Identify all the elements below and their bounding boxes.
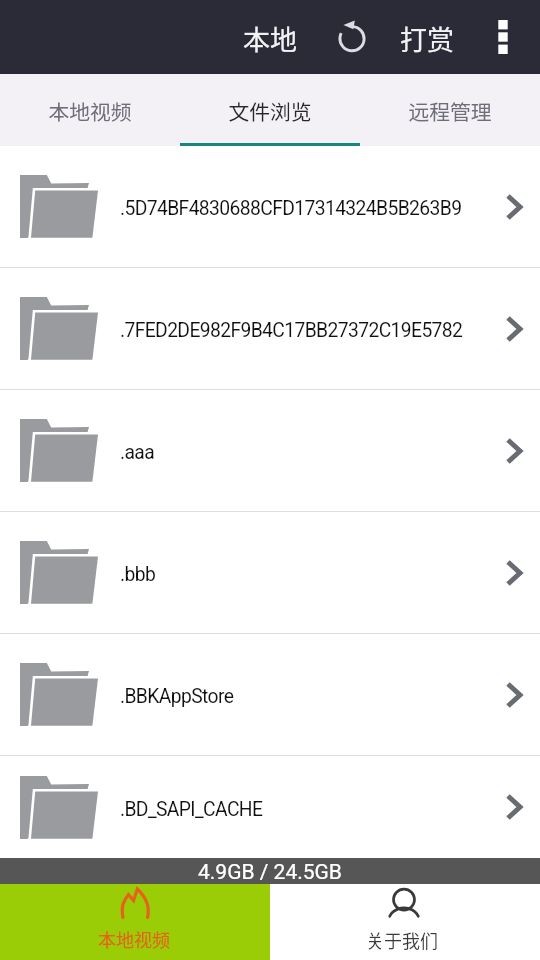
- staticText: 打赏: [400, 19, 454, 58]
- staticText: .BBKAppStore: [120, 685, 503, 708]
- staticText: .bbb: [120, 563, 503, 586]
- button[interactable]: .BD_SAPI_CACHE: [0, 756, 540, 858]
- button[interactable]: 文件浏览: [180, 74, 360, 146]
- button[interactable]: 远程管理: [360, 74, 540, 146]
- staticText: 4.9GB / 24.5GB: [198, 860, 342, 885]
- button[interactable]: 打赏: [391, 13, 463, 63]
- staticText: 文件浏览: [228, 96, 312, 126]
- button[interactable]: 关于我们: [270, 884, 540, 960]
- staticText: .aaa: [120, 441, 503, 464]
- button[interactable]: .7FED2DE982F9B4C17BB27372C19E5782: [0, 268, 540, 389]
- staticText: 远程管理: [408, 96, 492, 126]
- button[interactable]: 本地: [234, 13, 306, 63]
- button[interactable]: More options: [481, 14, 525, 60]
- button[interactable]: .aaa: [0, 390, 540, 511]
- staticText: 本地视频: [98, 926, 170, 952]
- staticText: .5D74BF4830688CFD17314324B5B263B9: [120, 197, 503, 220]
- button[interactable]: 本地视频: [0, 74, 180, 146]
- staticText: 本地视频: [48, 96, 132, 126]
- button[interactable]: .bbb: [0, 512, 540, 633]
- button[interactable]: .5D74BF4830688CFD17314324B5B263B9: [0, 146, 540, 267]
- staticText: .BD_SAPI_CACHE: [120, 798, 503, 821]
- button[interactable]: 本地视频: [0, 884, 270, 960]
- staticText: .7FED2DE982F9B4C17BB27372C19E5782: [120, 319, 503, 342]
- staticText: 关于我们: [366, 927, 438, 953]
- staticText: 本地: [243, 19, 297, 58]
- button[interactable]: Refresh: [330, 14, 374, 58]
- button[interactable]: .BBKAppStore: [0, 634, 540, 755]
